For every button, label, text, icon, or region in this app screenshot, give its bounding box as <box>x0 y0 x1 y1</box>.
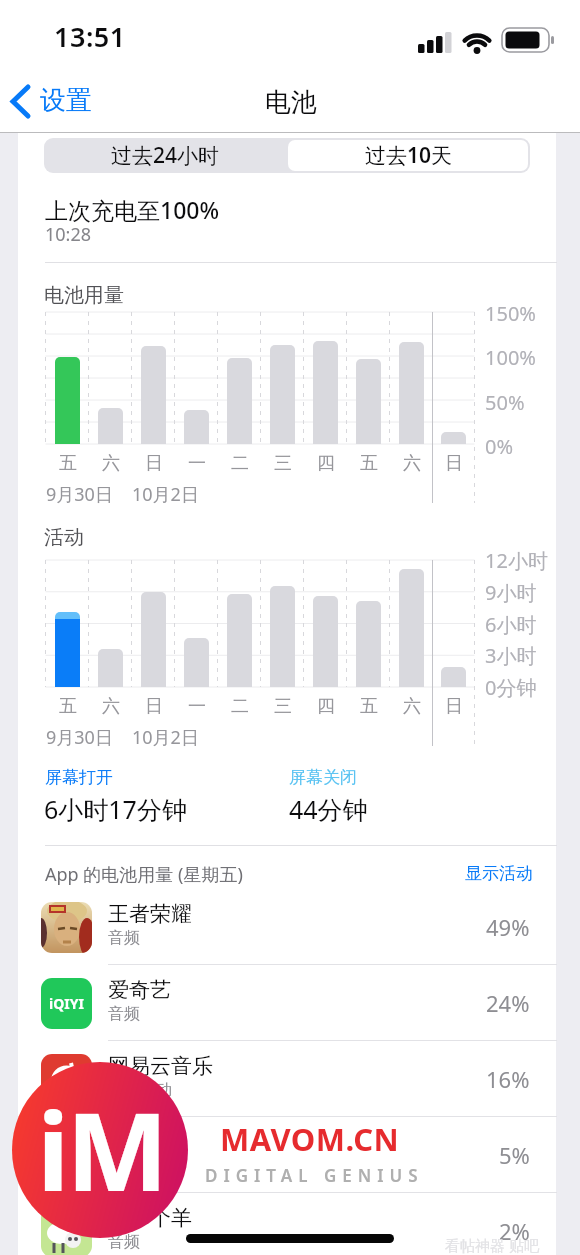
staticText: 10:28 <box>45 222 92 247</box>
staticText: App 的电池用量 (星期五) <box>45 862 243 887</box>
staticText: 五 <box>360 695 378 718</box>
staticText: 音频 <box>108 928 140 948</box>
staticText: 100% <box>485 344 536 371</box>
staticText: 爱奇艺 <box>108 977 171 1003</box>
staticText: 屏幕打开 <box>45 767 113 788</box>
staticText: 44分钟 <box>289 792 368 826</box>
staticText: 二 <box>231 695 249 718</box>
staticText: 9月30日 <box>46 482 113 507</box>
staticText: 三 <box>274 695 292 718</box>
staticText: 显示活动 <box>465 863 533 884</box>
staticText: 一 <box>188 695 206 718</box>
staticText: 音频 <box>108 1004 140 1024</box>
staticText: 五 <box>59 452 77 475</box>
staticText: 六 <box>403 452 421 475</box>
staticText: 日 <box>145 695 163 718</box>
staticText: DIGITAL GENIUS <box>205 1164 424 1187</box>
staticText: 150% <box>485 300 536 327</box>
staticText: 50% <box>485 389 525 416</box>
staticText: 后台活动 <box>108 1080 172 1100</box>
staticText: 2% <box>499 1216 530 1242</box>
staticText: 10月2日 <box>132 482 199 507</box>
staticText: MAVOM.CN <box>220 1118 400 1160</box>
button[interactable]: 网易云音乐 <box>0 1054 580 1130</box>
staticText: 0分钟 <box>485 674 537 701</box>
staticText: 网易云音乐 <box>108 1053 213 1079</box>
staticText: 羊了个羊 <box>108 1205 192 1231</box>
staticText: 13:51 <box>54 18 126 55</box>
staticText: 9小时 <box>485 579 537 606</box>
staticText: 9月30日 <box>46 725 113 750</box>
staticText: 二 <box>231 452 249 475</box>
staticText: 16% <box>486 1064 530 1090</box>
staticText: 24% <box>486 988 530 1014</box>
staticText: 10月2日 <box>132 725 199 750</box>
staticText: 看帖神器 贴吧 <box>445 1235 539 1255</box>
staticText: 五 <box>59 695 77 718</box>
staticText: iM <box>37 1076 166 1223</box>
staticText: 3小时 <box>485 642 537 669</box>
button[interactable]: 显示活动 <box>413 863 533 889</box>
staticText: 三 <box>274 452 292 475</box>
staticText: 上次充电至100% <box>45 194 220 225</box>
staticText: 电池用量 <box>44 283 124 308</box>
staticText: 屏幕关闭 <box>289 767 357 788</box>
button[interactable]: 过去10天 <box>287 138 530 173</box>
staticText: 日 <box>445 695 463 718</box>
staticText: 过去10天 <box>365 141 453 170</box>
staticText: 49% <box>486 912 530 938</box>
staticText: 12小时 <box>485 547 548 574</box>
staticText: 电池 <box>265 86 317 119</box>
staticText: iQIYI <box>49 994 84 1013</box>
staticText: 活动 <box>44 525 84 550</box>
staticText: 0% <box>485 433 514 460</box>
button[interactable]: 羊了个羊 <box>0 1206 580 1255</box>
staticText: 6小时17分钟 <box>44 792 187 826</box>
staticText: 六 <box>403 695 421 718</box>
staticText: 日 <box>445 452 463 475</box>
staticText: 日 <box>145 452 163 475</box>
staticText: 过去24小时 <box>111 141 220 170</box>
button[interactable]: 5% <box>0 1130 580 1206</box>
button[interactable]: 设置 <box>8 80 118 120</box>
staticText: 5% <box>499 1140 530 1166</box>
button[interactable]: 过去24小时 <box>44 138 287 173</box>
button[interactable]: iQIYI <box>0 978 580 1054</box>
staticText: 四 <box>317 695 335 718</box>
staticText: 六 <box>102 695 120 718</box>
staticText: 6小时 <box>485 611 537 638</box>
staticText: 设置 <box>40 84 92 117</box>
staticText: 一 <box>188 452 206 475</box>
staticText: 六 <box>102 452 120 475</box>
button[interactable]: 王者荣耀 <box>0 902 580 978</box>
staticText: 四 <box>317 452 335 475</box>
staticText: 五 <box>360 452 378 475</box>
staticText: 王者荣耀 <box>108 901 192 927</box>
staticText: 音频 <box>108 1232 140 1252</box>
